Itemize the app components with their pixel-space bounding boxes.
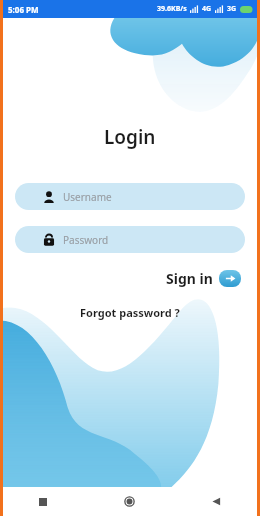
staticText: Sign in (166, 269, 213, 288)
button[interactable]: Sign in (164, 267, 243, 290)
staticText: 5:06 PM (8, 4, 39, 15)
staticText: Forgot password ? (80, 305, 180, 320)
button[interactable]: Back (173, 487, 260, 516)
staticText: Username (63, 190, 112, 204)
staticText: Login (104, 124, 156, 150)
staticText: 3G (227, 4, 237, 14)
button[interactable]: Forgot password ? (74, 302, 186, 323)
button[interactable]: Password (15, 226, 245, 253)
staticText: Password (63, 233, 109, 247)
staticText: 4G (202, 4, 212, 14)
button[interactable]: Recent apps (0, 487, 86, 516)
button[interactable]: Home (86, 487, 173, 516)
button[interactable]: Username (15, 183, 245, 210)
staticText: 39.6KB/s (157, 4, 187, 14)
